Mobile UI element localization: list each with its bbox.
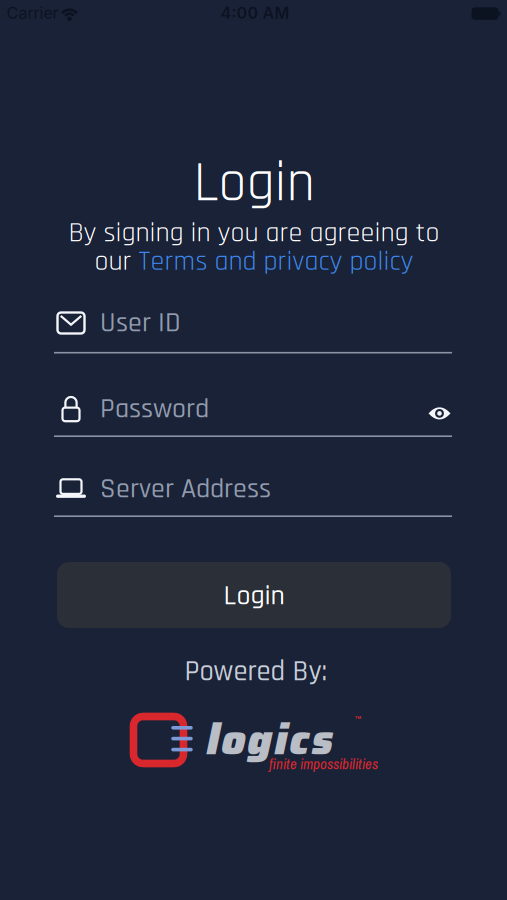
button[interactable]: Terms and privacy policy [138,244,413,279]
button[interactable]: User ID [54,295,452,353]
staticText: Password [100,391,209,427]
button[interactable]: Show password [428,406,450,421]
staticText: Server Address [100,471,271,507]
staticText: 4:00 AM [220,3,289,23]
button[interactable]: Login [57,562,451,628]
staticText: User ID [100,305,181,341]
staticText: Login [193,148,314,220]
button[interactable]: Server Address [54,459,452,517]
staticText: Powered By: [184,654,327,690]
staticText: Carrier [6,3,58,23]
staticText: logics [206,706,333,773]
staticText: Login [223,578,284,614]
staticText: By signing in you are agreeing to [68,215,439,251]
staticText: our [94,244,138,279]
staticText: ™ [354,713,361,726]
staticText: finite impossibilities [269,754,378,774]
button[interactable]: Password [54,379,452,437]
staticText: Terms and privacy policy [138,244,413,279]
